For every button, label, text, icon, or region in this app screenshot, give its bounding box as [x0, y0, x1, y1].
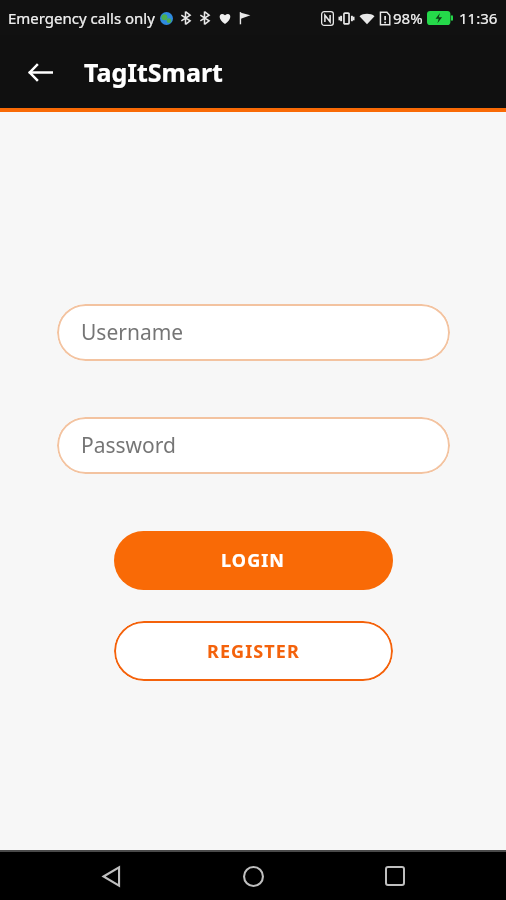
button[interactable]: Back	[80, 852, 142, 900]
staticText: 98%	[393, 8, 423, 28]
staticText: 11:36	[459, 8, 498, 28]
staticText: REGISTER	[207, 639, 300, 664]
button[interactable]: Home	[222, 852, 284, 900]
staticText: Username	[81, 318, 184, 347]
button[interactable]: LOGIN	[114, 531, 393, 590]
staticText: Password	[81, 431, 176, 460]
button[interactable]: Back	[16, 48, 64, 96]
button[interactable]: Password	[57, 417, 450, 474]
button[interactable]: Recent apps	[364, 852, 426, 900]
button[interactable]: REGISTER	[114, 621, 393, 681]
staticText: LOGIN	[221, 548, 286, 573]
button[interactable]: Username	[57, 304, 450, 361]
staticText: Emergency calls only	[8, 8, 155, 28]
staticText: TagItSmart	[84, 55, 223, 89]
